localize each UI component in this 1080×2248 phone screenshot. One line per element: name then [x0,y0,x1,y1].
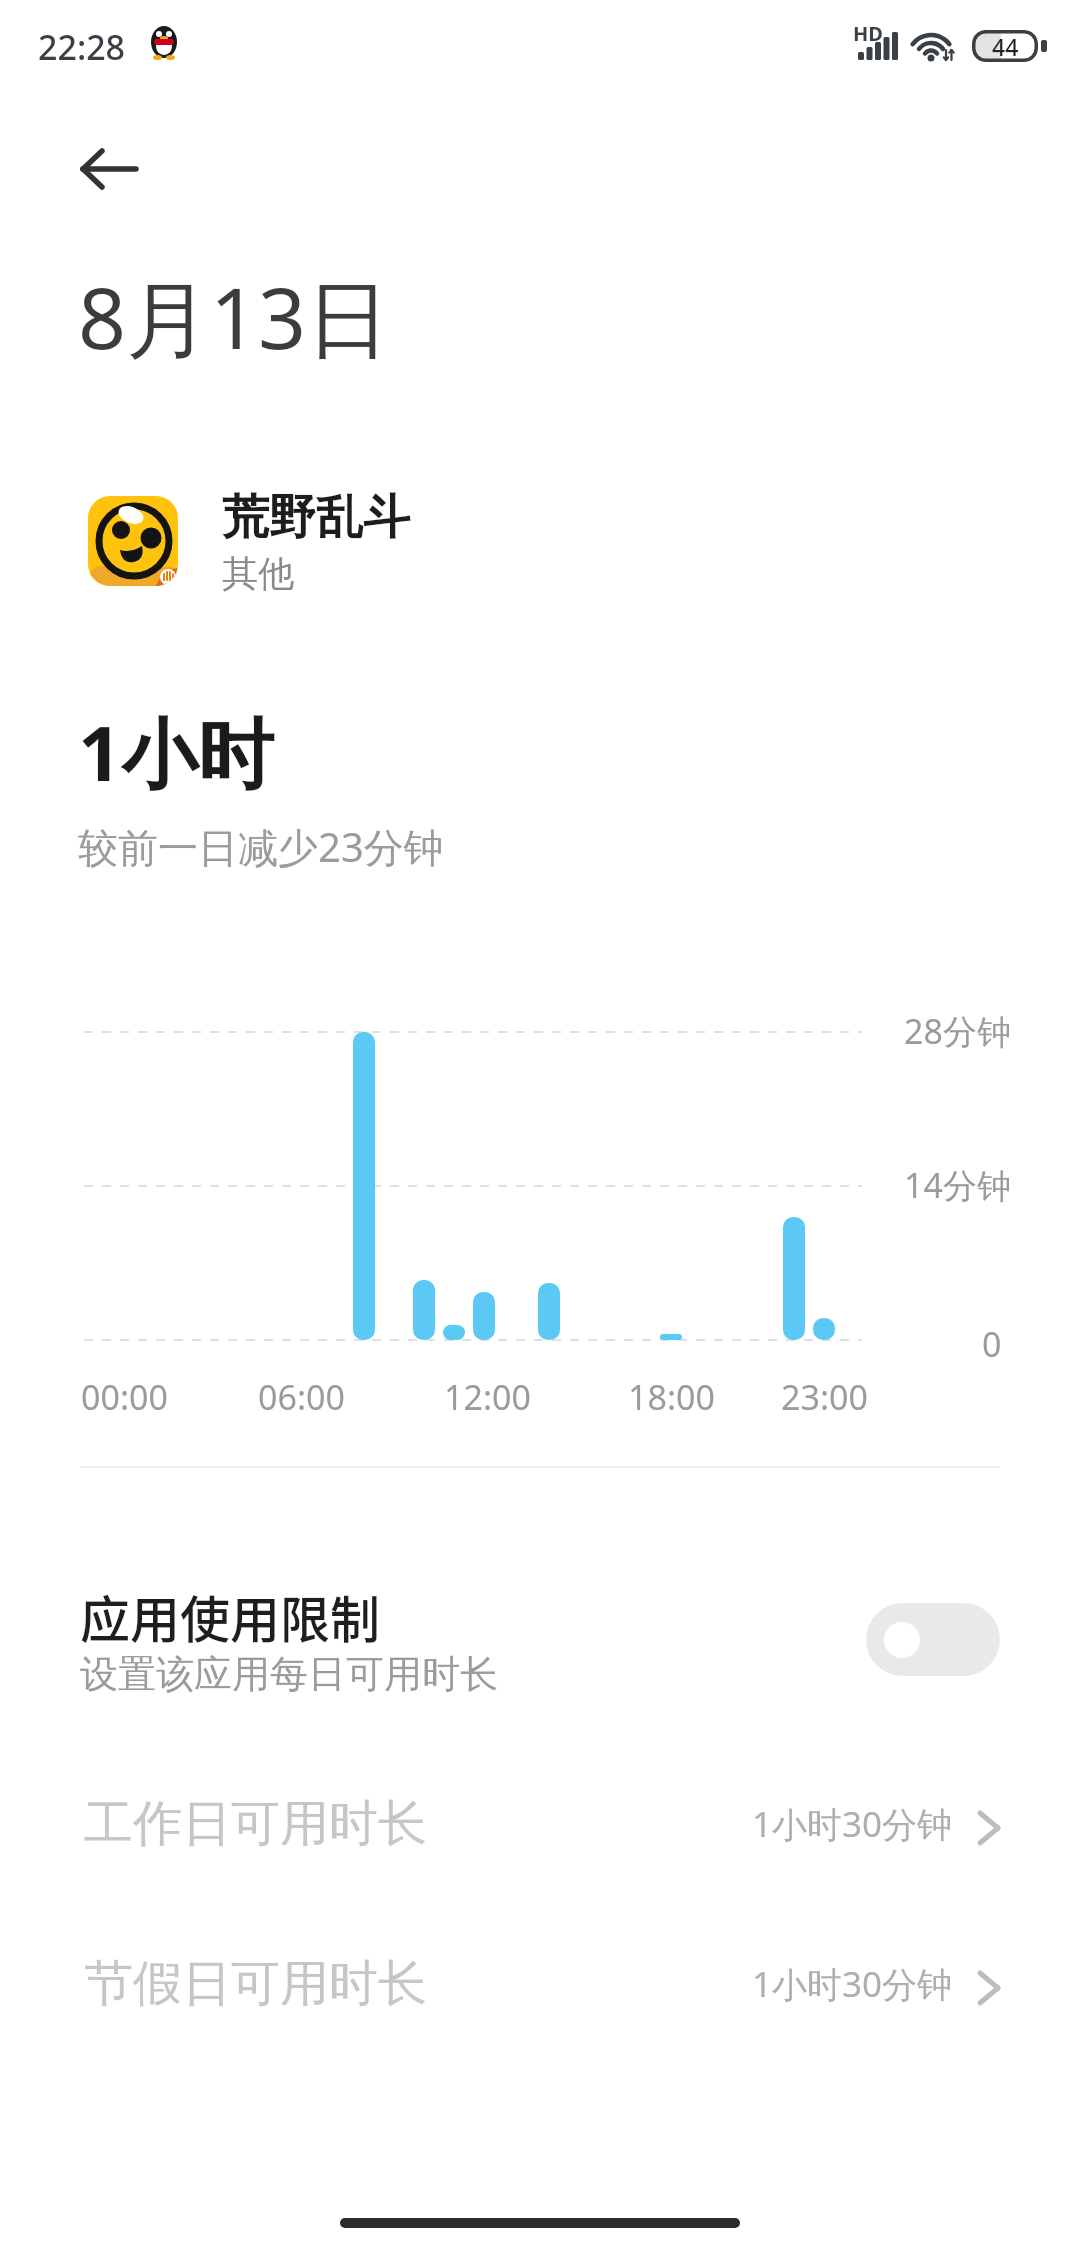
staticText: 0 [982,1321,1002,1367]
staticText: 1小时30分钟 [751,1800,952,1848]
staticText: 荒野乱斗 [222,488,410,547]
staticText: 06:00 [258,1374,345,1420]
staticText: 节假日可用时长 [84,1953,427,2015]
staticText: HD [853,20,883,47]
staticText: 44 [992,31,1019,62]
staticText: 00:00 [81,1374,168,1420]
staticText: 其他 [222,551,294,596]
staticText: 22:28 [38,24,126,70]
staticText: 28分钟 [904,1008,1011,1054]
staticText: 8月13日 [78,259,391,374]
staticText: 设置该应用每日可用时长 [80,1650,498,1698]
staticText: 12:00 [444,1374,531,1420]
staticText: 工作日可用时长 [84,1793,427,1855]
button[interactable]: 节假日可用时长 [0,1945,1080,2065]
staticText: 1小时30分钟 [751,1960,952,2008]
button[interactable]: 工作日可用时长 [0,1785,1080,1905]
button[interactable] [60,128,160,208]
staticText: 18:00 [628,1374,715,1420]
staticText: 1小时 [78,700,274,804]
staticText: 14分钟 [904,1162,1011,1208]
staticText: 23:00 [781,1374,868,1420]
button[interactable] [866,1603,1000,1676]
button[interactable] [60,476,620,606]
staticText: 较前一日减少23分钟 [78,819,444,874]
staticText: 应用使用限制 [80,1580,380,1652]
